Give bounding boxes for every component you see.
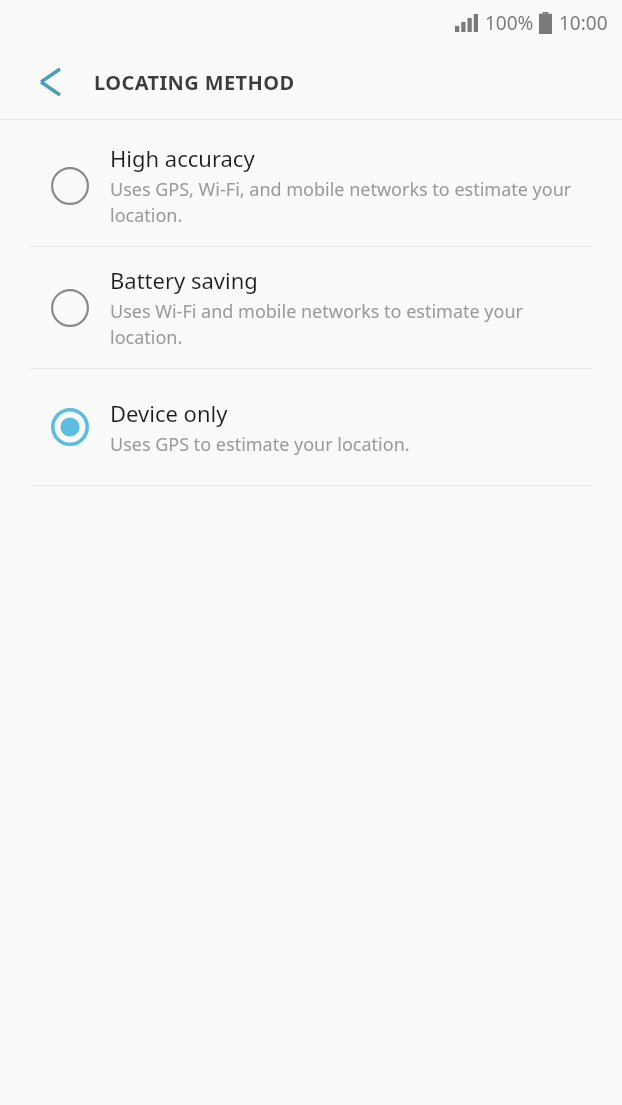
button[interactable]: Battery saving <box>0 247 622 368</box>
button[interactable]: High accuracy <box>0 125 622 246</box>
staticText: LOCATING METHOD <box>94 69 295 96</box>
staticText: Battery saving <box>110 265 258 295</box>
button[interactable]: Back <box>22 54 78 110</box>
staticText: Uses Wi-Fi and mobile networks to estima… <box>110 299 590 350</box>
staticText: 10:00 <box>559 10 608 36</box>
staticText: Uses GPS, Wi-Fi, and mobile networks to … <box>110 177 590 228</box>
staticText: Uses GPS to estimate your location. <box>110 432 410 457</box>
staticText: 100% <box>485 10 534 36</box>
staticText: Device only <box>110 398 228 428</box>
button[interactable]: Device only <box>0 369 622 485</box>
staticText: High accuracy <box>110 143 255 173</box>
